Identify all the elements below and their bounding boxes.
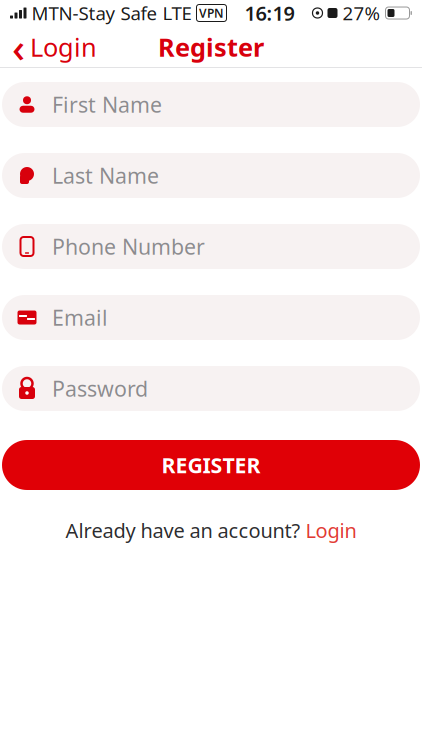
staticText: Last Name bbox=[52, 161, 159, 190]
staticText: REGISTER bbox=[161, 451, 260, 479]
button[interactable]: Already have an account? bbox=[53, 511, 368, 550]
staticText: ‹ bbox=[12, 20, 25, 73]
staticText: Login bbox=[305, 517, 356, 544]
staticText: 16:19 bbox=[244, 0, 294, 26]
button[interactable]: Password bbox=[2, 366, 420, 411]
button[interactable]: ‹ bbox=[0, 28, 109, 66]
staticText: MTN-Stay Safe bbox=[31, 1, 157, 25]
button[interactable]: Email bbox=[2, 295, 420, 340]
staticText: Register bbox=[158, 30, 264, 64]
button[interactable]: REGISTER bbox=[2, 440, 420, 490]
button[interactable]: Phone Number bbox=[2, 224, 420, 269]
staticText: Phone Number bbox=[52, 232, 205, 261]
button[interactable]: Last Name bbox=[2, 153, 420, 198]
staticText: LTE bbox=[162, 1, 191, 25]
staticText: VPN bbox=[199, 5, 224, 21]
staticText: Already have an account? bbox=[65, 517, 300, 544]
button[interactable]: First Name bbox=[2, 82, 420, 127]
staticText: Email bbox=[52, 303, 108, 332]
staticText: 27% bbox=[342, 1, 380, 25]
staticText: Login bbox=[30, 30, 97, 64]
staticText: Password bbox=[52, 374, 148, 403]
staticText: First Name bbox=[52, 90, 162, 119]
